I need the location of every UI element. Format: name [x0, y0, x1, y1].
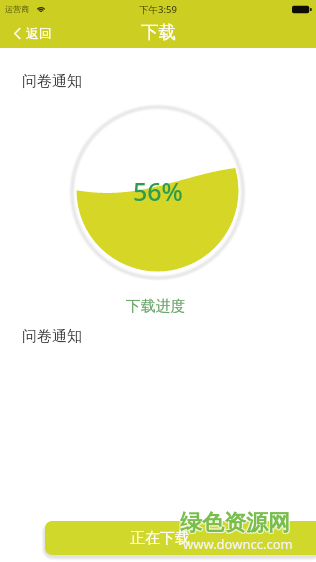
staticText: www.downcc.com	[183, 535, 293, 553]
staticText: 绿色资源网	[181, 509, 291, 537]
button[interactable]: 正在下载	[45, 521, 316, 555]
staticText: 56%	[133, 174, 183, 208]
staticText: 绿色资源网	[179, 508, 289, 536]
staticText: 绿色资源网	[179, 510, 289, 538]
staticText: 下午3:59	[139, 3, 177, 16]
staticText: 问卷通知	[22, 327, 82, 346]
staticText: 问卷通知	[22, 72, 82, 91]
staticText: 绿色资源网	[181, 510, 291, 538]
staticText: 下载	[141, 21, 176, 43]
staticText: 绿色资源网	[180, 510, 290, 538]
staticText: 绿色资源网	[180, 509, 290, 537]
staticText: 绿色资源网	[181, 508, 291, 536]
button[interactable]: 返回	[0, 18, 62, 48]
staticText: 正在下载	[130, 529, 190, 548]
staticText: 运营商	[5, 4, 29, 14]
button[interactable]: 下载进度 56%	[67, 100, 248, 281]
staticText: 绿色资源网	[179, 509, 289, 537]
staticText: 返回	[26, 25, 52, 41]
staticText: 绿色资源网	[180, 508, 290, 536]
staticText: 下载进度	[126, 297, 186, 316]
